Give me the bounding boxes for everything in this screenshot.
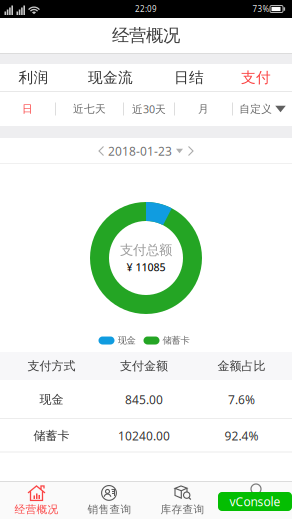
button[interactable]: 自定义 xyxy=(233,92,292,126)
button[interactable]: 日 xyxy=(0,92,55,126)
staticText: ¥ 11085 xyxy=(126,260,165,274)
staticText: 经营概况 xyxy=(112,25,180,46)
staticText: 22:09 xyxy=(135,4,157,14)
staticText: 支付 xyxy=(241,68,271,86)
staticText: 日结 xyxy=(174,68,204,86)
button[interactable]: 销售查询 xyxy=(73,482,146,518)
button[interactable]: 日结 xyxy=(157,63,221,91)
staticText: 自定义 xyxy=(239,102,272,115)
staticText: 2018-01-23 xyxy=(108,143,172,159)
button[interactable]: 2018-01-23 xyxy=(98,143,193,159)
staticText: vConsole xyxy=(229,493,280,509)
staticText: 支付金额 xyxy=(120,359,168,373)
button[interactable]: 现金流 xyxy=(78,63,142,91)
staticText: 现金流 xyxy=(88,68,133,86)
staticText: 储蓄卡 xyxy=(162,335,189,346)
staticText: 7.6% xyxy=(228,391,255,407)
staticText: 支付方式 xyxy=(27,359,75,373)
button[interactable]: 支付 xyxy=(224,63,288,91)
staticText: 支付总额 xyxy=(120,242,172,258)
button[interactable]: 近30天 xyxy=(124,92,174,126)
staticText: 92.4% xyxy=(224,428,258,444)
staticText: 库存查询 xyxy=(160,503,204,516)
staticText: 现金 xyxy=(117,335,135,346)
button[interactable]: 利润 xyxy=(1,63,65,91)
staticText: 储蓄卡 xyxy=(33,428,69,443)
button[interactable]: 近七天 xyxy=(56,92,123,126)
staticText: 日 xyxy=(22,102,33,115)
staticText: 73% xyxy=(252,4,269,14)
staticText: 利润 xyxy=(18,68,48,86)
button[interactable]: 月 xyxy=(175,92,232,126)
staticText: 近30天 xyxy=(132,102,166,116)
button[interactable]: 经营概况 xyxy=(0,482,73,518)
button[interactable]: vConsole xyxy=(218,492,292,511)
staticText: 845.00 xyxy=(125,391,163,407)
staticText: 现金 xyxy=(39,392,63,407)
staticText: 销售查询 xyxy=(87,503,131,516)
staticText: 金额占比 xyxy=(217,359,265,373)
button[interactable]: 库存查询 xyxy=(146,482,219,518)
staticText: 10240.00 xyxy=(118,428,170,444)
staticText: 月 xyxy=(198,102,209,115)
staticText: 经营概况 xyxy=(14,503,58,516)
staticText: 近七天 xyxy=(73,102,106,115)
